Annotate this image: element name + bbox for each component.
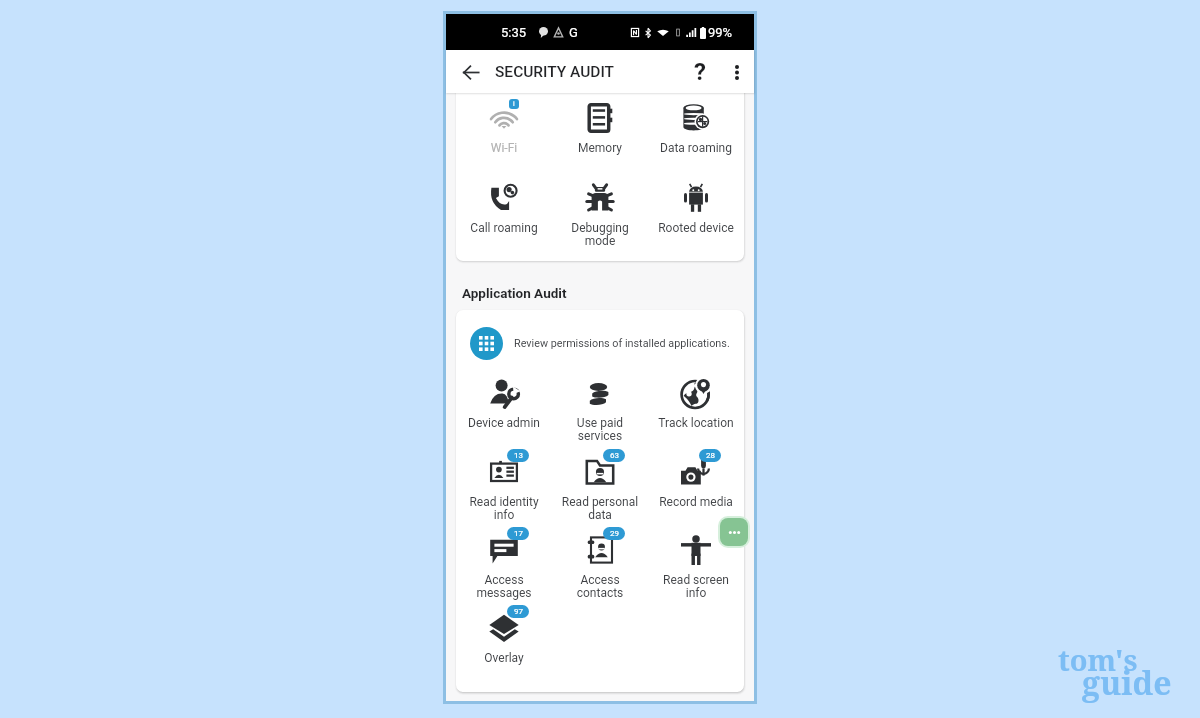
button[interactable]: 17 <box>456 530 552 610</box>
staticText: 17 <box>514 529 523 538</box>
staticText: Read screen info <box>648 573 744 599</box>
button[interactable]: 13 <box>456 452 552 532</box>
staticText: Access contacts <box>552 573 648 599</box>
staticText: Read personal data <box>552 495 648 521</box>
button[interactable]: 29 <box>552 530 648 610</box>
button[interactable]: Help <box>685 53 715 91</box>
button[interactable]: Debugging mode <box>552 178 648 258</box>
button[interactable]: Data roaming <box>648 98 744 178</box>
button[interactable]: More options <box>725 53 749 91</box>
staticText: 97 <box>514 607 523 616</box>
button[interactable]: Call roaming <box>456 178 552 258</box>
button[interactable]: Read screen info <box>648 530 744 610</box>
staticText: 5:35 <box>501 25 527 40</box>
button[interactable]: 97 <box>456 608 552 688</box>
staticText: Review permissions of installed applicat… <box>514 337 730 350</box>
button[interactable]: Use paid services <box>552 373 648 453</box>
staticText: tom's <box>1058 640 1138 679</box>
staticText: SECURITY AUDIT <box>495 63 615 81</box>
staticText: Overlay <box>456 651 552 665</box>
staticText: 29 <box>610 529 619 538</box>
staticText: 28 <box>706 451 715 460</box>
staticText: 99% <box>708 25 733 40</box>
button[interactable]: Rooted device <box>648 178 744 258</box>
button[interactable]: Back <box>454 55 488 89</box>
staticText: i <box>513 100 515 108</box>
staticText: 13 <box>514 451 523 460</box>
staticText: Track location <box>648 416 744 430</box>
staticText: Rooted device <box>648 221 744 235</box>
staticText: guide <box>1082 661 1172 705</box>
staticText: Memory <box>552 141 648 155</box>
button[interactable]: Device admin <box>456 373 552 453</box>
staticText: Call roaming <box>456 221 552 235</box>
button[interactable]: 63 <box>552 452 648 532</box>
button[interactable]: Track location <box>648 373 744 453</box>
staticText: Access messages <box>456 573 552 599</box>
staticText: G <box>569 25 578 40</box>
staticText: Data roaming <box>648 141 744 155</box>
button[interactable]: i <box>456 98 552 178</box>
staticText: Read identity info <box>456 495 552 521</box>
button[interactable]: 28 <box>648 452 744 532</box>
staticText: 63 <box>610 451 619 460</box>
staticText: Debugging mode <box>552 221 648 247</box>
button[interactable]: Memory <box>552 98 648 178</box>
staticText: ? <box>694 58 706 86</box>
button[interactable]: More actions <box>720 518 748 546</box>
staticText: Application Audit <box>462 285 567 301</box>
button[interactable]: Review permissions of installed applicat… <box>470 325 740 361</box>
staticText: Wi-Fi <box>456 141 552 155</box>
staticText: Device admin <box>456 416 552 430</box>
staticText: Record media <box>648 495 744 509</box>
staticText: Use paid services <box>552 416 648 442</box>
